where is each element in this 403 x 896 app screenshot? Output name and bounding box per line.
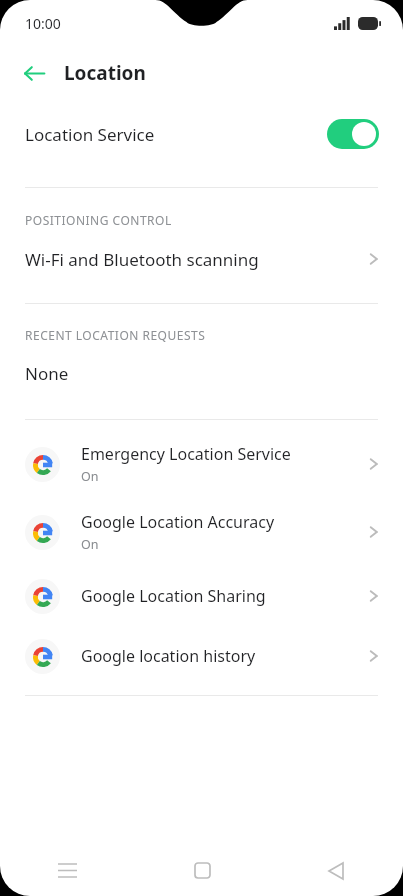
button[interactable]: Google Location Accuracy bbox=[0, 498, 403, 566]
button[interactable]: Google Location Sharing bbox=[0, 566, 403, 626]
staticText: Wi-Fi and Bluetooth scanning bbox=[25, 248, 368, 271]
button[interactable]: Home bbox=[135, 845, 269, 896]
button[interactable]: Back bbox=[269, 845, 403, 896]
button[interactable]: Location Service bbox=[0, 100, 403, 168]
staticText: None bbox=[25, 362, 69, 385]
staticText: POSITIONING CONTROL bbox=[25, 212, 172, 228]
staticText: Location bbox=[64, 60, 146, 86]
staticText: Google Location Sharing bbox=[81, 585, 266, 607]
staticText: Location Service bbox=[25, 123, 327, 146]
button[interactable]: Wi-Fi and Bluetooth scanning bbox=[0, 233, 403, 285]
button[interactable]: Emergency Location Service bbox=[0, 430, 403, 498]
staticText: Google location history bbox=[81, 645, 256, 667]
button[interactable]: Back bbox=[14, 53, 54, 93]
button[interactable]: Recent apps bbox=[0, 845, 135, 896]
staticText: Google Location Accuracy bbox=[81, 511, 275, 533]
staticText: On bbox=[81, 468, 99, 485]
button[interactable]: Google location history bbox=[0, 626, 403, 686]
staticText: On bbox=[81, 536, 99, 553]
staticText: RECENT LOCATION REQUESTS bbox=[25, 327, 206, 343]
staticText: Emergency Location Service bbox=[81, 443, 291, 465]
staticText: 10:00 bbox=[25, 14, 61, 33]
button[interactable]: Location Service, on bbox=[327, 119, 379, 149]
